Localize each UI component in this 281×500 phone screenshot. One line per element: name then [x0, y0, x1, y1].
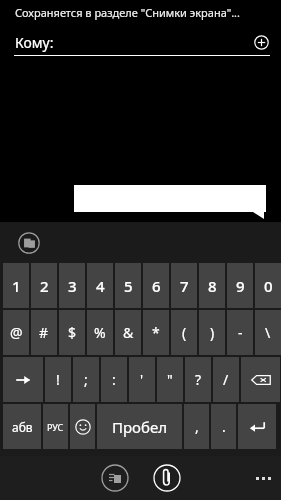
button[interactable]: @ — [3, 310, 29, 355]
staticText: - — [238, 323, 243, 342]
button[interactable]: 3 — [59, 263, 85, 308]
button[interactable]: Clipboard — [17, 231, 41, 255]
staticText: 8 — [208, 276, 217, 296]
staticText: 3 — [68, 276, 77, 296]
button[interactable]: ' — [129, 357, 155, 402]
button[interactable]: 4 — [87, 263, 113, 308]
staticText: ( — [182, 323, 187, 342]
staticText: ? — [195, 370, 202, 389]
button[interactable]: More options — [256, 477, 271, 480]
staticText: @ — [10, 323, 23, 342]
button[interactable]: % — [87, 310, 113, 355]
staticText: , — [195, 417, 199, 436]
button[interactable]: Backspace — [241, 357, 280, 402]
button[interactable]: Attach — [152, 463, 182, 493]
staticText: 0 — [264, 276, 273, 296]
button[interactable]: 5 — [115, 263, 141, 308]
staticText: ; — [84, 370, 88, 389]
button[interactable]: 0 — [255, 263, 281, 308]
staticText: Кому: — [15, 33, 54, 52]
staticText: " — [167, 370, 173, 389]
staticText: 4 — [96, 276, 105, 296]
button[interactable] — [74, 185, 266, 219]
staticText: * — [152, 323, 160, 342]
staticText: ' — [140, 370, 144, 389]
button[interactable]: Emoji — [70, 404, 95, 449]
button[interactable]: Send message — [100, 463, 130, 493]
button[interactable]: " — [157, 357, 183, 402]
staticText: \ — [265, 323, 271, 342]
staticText: $ — [68, 323, 77, 342]
button[interactable]: 9 — [227, 263, 253, 308]
staticText: 7 — [180, 276, 189, 296]
button[interactable]: . — [211, 404, 236, 449]
staticText: 6 — [152, 276, 161, 296]
staticText: % — [94, 323, 106, 342]
staticText: Пробел — [112, 417, 168, 437]
staticText: : — [112, 370, 116, 389]
button[interactable]: : — [101, 357, 127, 402]
button[interactable]: Add recipient — [249, 30, 273, 54]
staticText: & — [123, 323, 134, 342]
staticText: 9 — [236, 276, 245, 296]
button[interactable]: * — [143, 310, 169, 355]
button[interactable]: 7 — [171, 263, 197, 308]
button[interactable]: Enter — [238, 404, 276, 449]
staticText: ) — [210, 323, 215, 342]
staticText: 5 — [124, 276, 133, 296]
button[interactable]: 6 — [143, 263, 169, 308]
button[interactable]: абв — [3, 404, 41, 449]
button[interactable]: \ — [255, 310, 281, 355]
button[interactable]: РУС — [43, 404, 68, 449]
button[interactable]: ( — [171, 310, 197, 355]
button[interactable]: ; — [73, 357, 99, 402]
button[interactable]: , — [184, 404, 209, 449]
button[interactable]: ! — [45, 357, 71, 402]
button[interactable]: Пробел — [97, 404, 182, 449]
staticText: . — [222, 417, 226, 436]
button[interactable]: # — [31, 310, 57, 355]
button[interactable]: 1 — [3, 263, 29, 308]
button[interactable]: ? — [185, 357, 211, 402]
staticText: Сохраняется в разделе "Снимки экрана"... — [15, 5, 240, 20]
button[interactable]: $ — [59, 310, 85, 355]
button[interactable]: ) — [199, 310, 225, 355]
button[interactable]: & — [115, 310, 141, 355]
staticText: ! — [56, 370, 60, 389]
staticText: РУС — [47, 421, 64, 433]
button[interactable]: 2 — [31, 263, 57, 308]
staticText: абв — [12, 419, 33, 435]
staticText: / — [223, 370, 229, 389]
button[interactable]: / — [213, 357, 239, 402]
button[interactable]: Кому: — [15, 33, 54, 52]
button[interactable]: - — [227, 310, 253, 355]
button[interactable]: 8 — [199, 263, 225, 308]
button[interactable]: More symbols — [3, 357, 43, 402]
staticText: 1 — [12, 276, 21, 296]
staticText: # — [39, 323, 49, 342]
staticText: 2 — [40, 276, 49, 296]
